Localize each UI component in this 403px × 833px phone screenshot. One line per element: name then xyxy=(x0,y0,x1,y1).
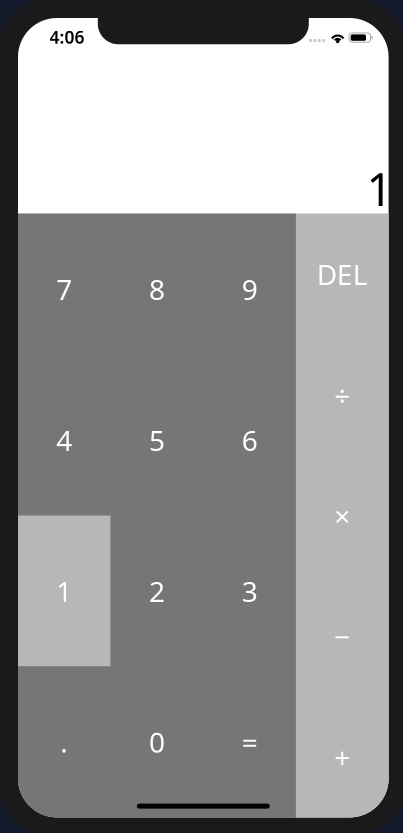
staticText: 1 xyxy=(367,158,393,219)
staticText: 6 xyxy=(242,421,258,459)
staticText: = xyxy=(242,723,258,760)
staticText: ÷ xyxy=(334,376,350,413)
staticText: 0 xyxy=(149,723,165,760)
staticText: . xyxy=(60,723,68,760)
button[interactable]: 9 xyxy=(203,214,296,365)
button[interactable]: Add xyxy=(296,697,389,817)
staticText: − xyxy=(334,618,350,655)
button[interactable]: 2 xyxy=(111,515,203,666)
staticText: 4 xyxy=(56,421,72,459)
staticText: 1 xyxy=(56,572,72,610)
staticText: 4:06 xyxy=(49,25,84,48)
button[interactable]: 0 xyxy=(111,666,203,817)
button[interactable]: Multiply xyxy=(296,455,389,576)
staticText: 2 xyxy=(149,572,165,610)
button[interactable]: 7 xyxy=(18,214,111,365)
button[interactable]: = xyxy=(203,666,296,817)
staticText: × xyxy=(334,497,350,534)
staticText: + xyxy=(334,738,350,776)
button[interactable]: 8 xyxy=(111,214,203,365)
staticText: 3 xyxy=(242,572,258,610)
staticText: 8 xyxy=(149,271,165,308)
staticText: 5 xyxy=(149,421,165,459)
staticText: 7 xyxy=(56,271,72,308)
button[interactable]: . xyxy=(18,666,111,817)
button[interactable]: 1 xyxy=(18,515,111,666)
button[interactable]: Delete xyxy=(296,214,389,334)
button[interactable]: 6 xyxy=(203,365,296,515)
button[interactable]: 5 xyxy=(111,365,203,515)
staticText: DEL xyxy=(317,255,368,293)
button[interactable]: Subtract xyxy=(296,576,389,697)
button[interactable]: Divide xyxy=(296,334,389,455)
button[interactable]: 3 xyxy=(203,515,296,666)
staticText: 9 xyxy=(242,271,258,308)
button[interactable]: 4 xyxy=(18,365,111,515)
